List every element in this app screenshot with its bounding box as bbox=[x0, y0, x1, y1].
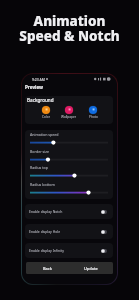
staticText: Color bbox=[42, 115, 51, 119]
staticText: Enable display Hole bbox=[29, 229, 61, 234]
staticText: Radius bottom bbox=[30, 182, 55, 187]
staticText: Background bbox=[27, 97, 54, 103]
button[interactable]: Wallpaper bbox=[61, 105, 77, 119]
staticText: Animation Speed & Notch bbox=[19, 12, 120, 45]
button[interactable]: Radius bottom bbox=[25, 182, 113, 196]
button[interactable]: Enable display Hole bbox=[25, 224, 113, 239]
staticText: Animation speed bbox=[30, 132, 59, 137]
staticText: Photo bbox=[89, 115, 98, 119]
staticText: Radius top bbox=[30, 165, 48, 170]
staticText: Preview bbox=[25, 84, 44, 90]
button[interactable]: Update bbox=[69, 262, 113, 274]
staticText: Back bbox=[43, 266, 52, 271]
button[interactable]: Enable display Infinity bbox=[25, 243, 113, 258]
button[interactable]: Back bbox=[26, 262, 69, 274]
button[interactable]: Animation speed bbox=[25, 132, 113, 146]
staticText: Update bbox=[84, 266, 98, 271]
staticText: Enable display Infinity bbox=[29, 248, 64, 253]
button[interactable]: Color bbox=[41, 105, 51, 119]
staticText: Enable display Notch bbox=[29, 209, 63, 214]
button[interactable]: Photo bbox=[88, 105, 98, 119]
staticText: 9:23 AM bbox=[32, 77, 45, 82]
button[interactable]: Radius top bbox=[25, 165, 113, 179]
staticText: Border size bbox=[30, 149, 49, 154]
button[interactable]: Enable display Notch bbox=[25, 204, 113, 219]
button[interactable]: Border size bbox=[25, 149, 113, 163]
staticText: Wallpaper bbox=[61, 115, 77, 119]
